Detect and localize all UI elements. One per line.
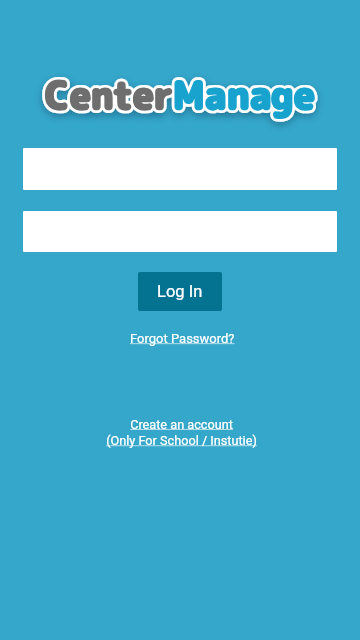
staticText: Log In — [157, 282, 203, 301]
staticText: Create an account (Only For School / Ins… — [80, 417, 283, 448]
button[interactable]: Create an account (Only For School / Ins… — [80, 417, 283, 448]
button[interactable]: Forgot Password? — [120, 331, 244, 346]
button[interactable]: Log In — [138, 272, 222, 311]
staticText: Forgot Password? — [130, 331, 235, 346]
